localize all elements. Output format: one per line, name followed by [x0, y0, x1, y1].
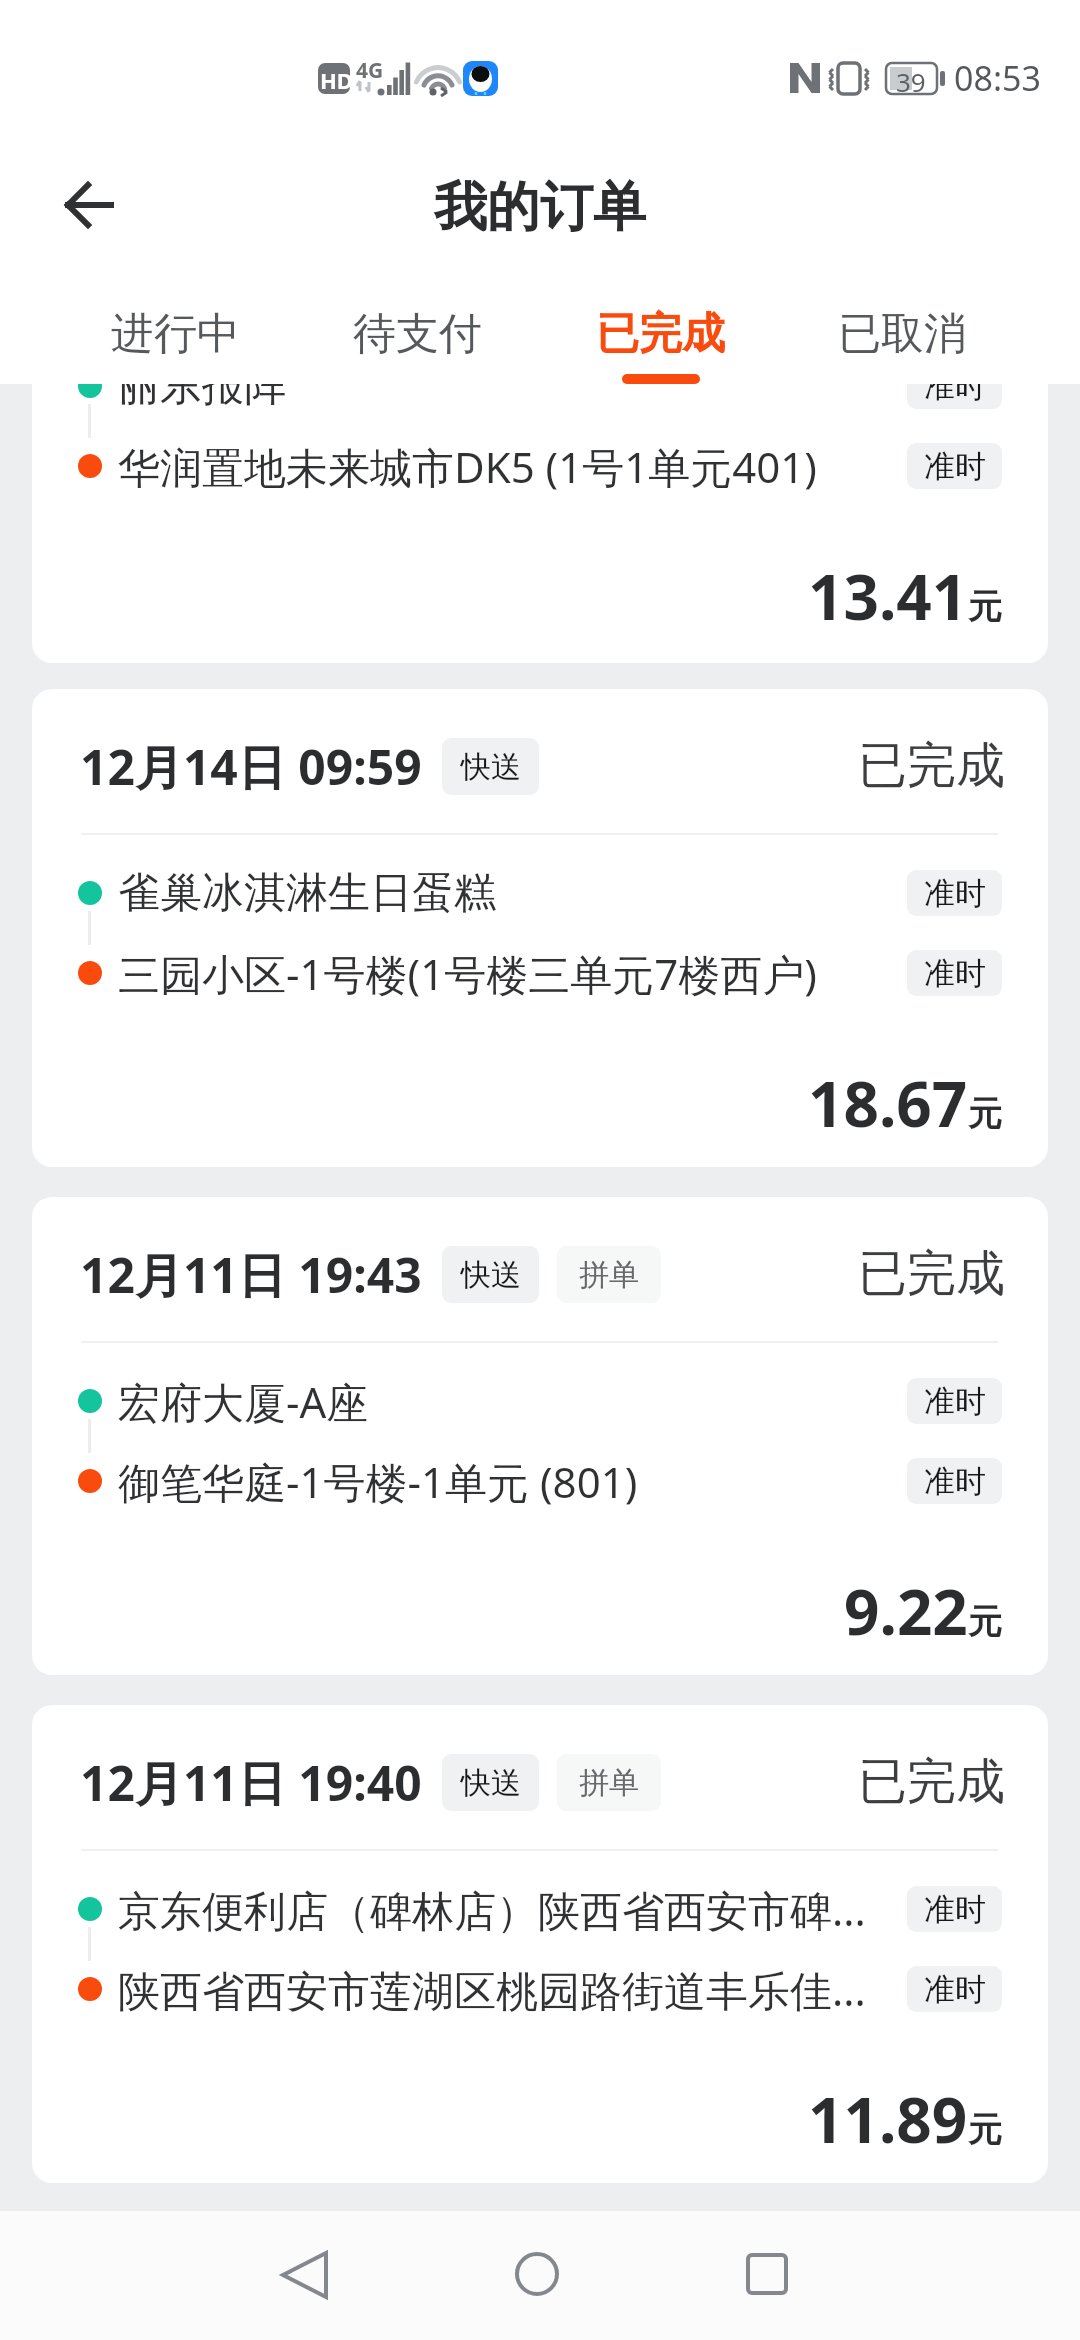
staticText: 元: [968, 2108, 1002, 2151]
button[interactable]: 拼单: [557, 1246, 661, 1303]
button[interactable]: 待支付: [307, 287, 527, 381]
staticText: 已取消: [838, 307, 967, 361]
staticText: 进行中: [111, 307, 240, 361]
staticText: 准时: [924, 367, 986, 406]
button[interactable]: 12月14日 10:22: [32, 182, 1048, 663]
staticText: 华润置地未来城市DK5 (1号1单元401): [118, 438, 817, 495]
staticText: 准时: [924, 1970, 986, 2009]
staticText: 快送: [461, 1256, 521, 1294]
button[interactable]: Back: [56, 170, 122, 236]
button[interactable]: 准时: [907, 363, 1002, 409]
staticText: 12月14日 09:59: [80, 734, 422, 798]
staticText: 丽东报阵: [118, 360, 286, 413]
staticText: 已完成: [596, 307, 725, 361]
button[interactable]: Back: [266, 2236, 342, 2312]
staticText: 准时: [924, 1382, 986, 1421]
staticText: 9.22: [844, 1569, 968, 1653]
staticText: 元: [968, 585, 1002, 628]
staticText: 13.41: [808, 554, 968, 638]
button[interactable]: 准时: [907, 1458, 1002, 1504]
staticText: 08:53: [954, 55, 1041, 101]
staticText: 39: [896, 64, 926, 99]
staticText: 12月11日 19:40: [80, 1750, 422, 1814]
button[interactable]: 进行中: [65, 287, 285, 381]
staticText: 待支付: [353, 307, 482, 361]
staticText: HD: [320, 65, 353, 95]
staticText: 18.67: [808, 1061, 968, 1145]
button[interactable]: 12月11日 19:43: [32, 1197, 1048, 1675]
staticText: 我的订单: [434, 174, 646, 241]
button[interactable]: 快送: [442, 1754, 539, 1811]
staticText: 陕西省西安市莲湖区桃园路街道丰乐佳...: [118, 1961, 866, 2018]
button[interactable]: Recents: [729, 2236, 805, 2312]
staticText: 京东便利店（碑林店）陕西省西安市碑...: [118, 1881, 866, 1938]
staticText: 御笔华庭-1号楼-1单元 (801): [118, 1453, 638, 1510]
button[interactable]: 拼单: [557, 1754, 661, 1811]
button[interactable]: 已完成: [550, 287, 770, 381]
staticText: 元: [968, 1092, 1002, 1135]
staticText: 已完成: [858, 1243, 1005, 1305]
button[interactable]: 快送: [442, 738, 539, 795]
button[interactable]: 快送: [442, 231, 539, 288]
button[interactable]: 快送: [442, 1246, 539, 1303]
staticText: 拼单: [579, 1764, 639, 1802]
staticText: 准时: [924, 954, 986, 993]
button[interactable]: 12月11日 19:40: [32, 1705, 1048, 2183]
staticText: 4G: [356, 56, 384, 85]
button[interactable]: 准时: [907, 870, 1002, 916]
button[interactable]: 12月14日 09:59: [32, 689, 1048, 1167]
staticText: 准时: [924, 1462, 986, 1501]
staticText: 已完成: [858, 1751, 1005, 1813]
button[interactable]: Home: [499, 2236, 575, 2312]
staticText: 拼单: [579, 1256, 639, 1294]
staticText: 准时: [924, 874, 986, 913]
button[interactable]: 准时: [907, 1886, 1002, 1932]
staticText: 快送: [461, 748, 521, 786]
button[interactable]: 准时: [907, 1378, 1002, 1424]
staticText: 12月11日 19:43: [80, 1242, 422, 1306]
button[interactable]: 准时: [907, 1966, 1002, 2012]
staticText: 元: [968, 1600, 1002, 1643]
staticText: 快送: [461, 1764, 521, 1802]
staticText: 准时: [924, 447, 986, 486]
button[interactable]: 准时: [907, 443, 1002, 489]
staticText: 宏府大厦-A座: [118, 1373, 369, 1430]
staticText: 准时: [924, 1890, 986, 1929]
staticText: 三园小区-1号楼(1号楼三单元7楼西户): [118, 945, 817, 1002]
button[interactable]: 已取消: [792, 287, 1012, 381]
button[interactable]: 准时: [907, 950, 1002, 996]
staticText: 已完成: [858, 735, 1005, 797]
staticText: 11.89: [808, 2077, 968, 2161]
staticText: 雀巢冰淇淋生日蛋糕: [118, 867, 496, 920]
